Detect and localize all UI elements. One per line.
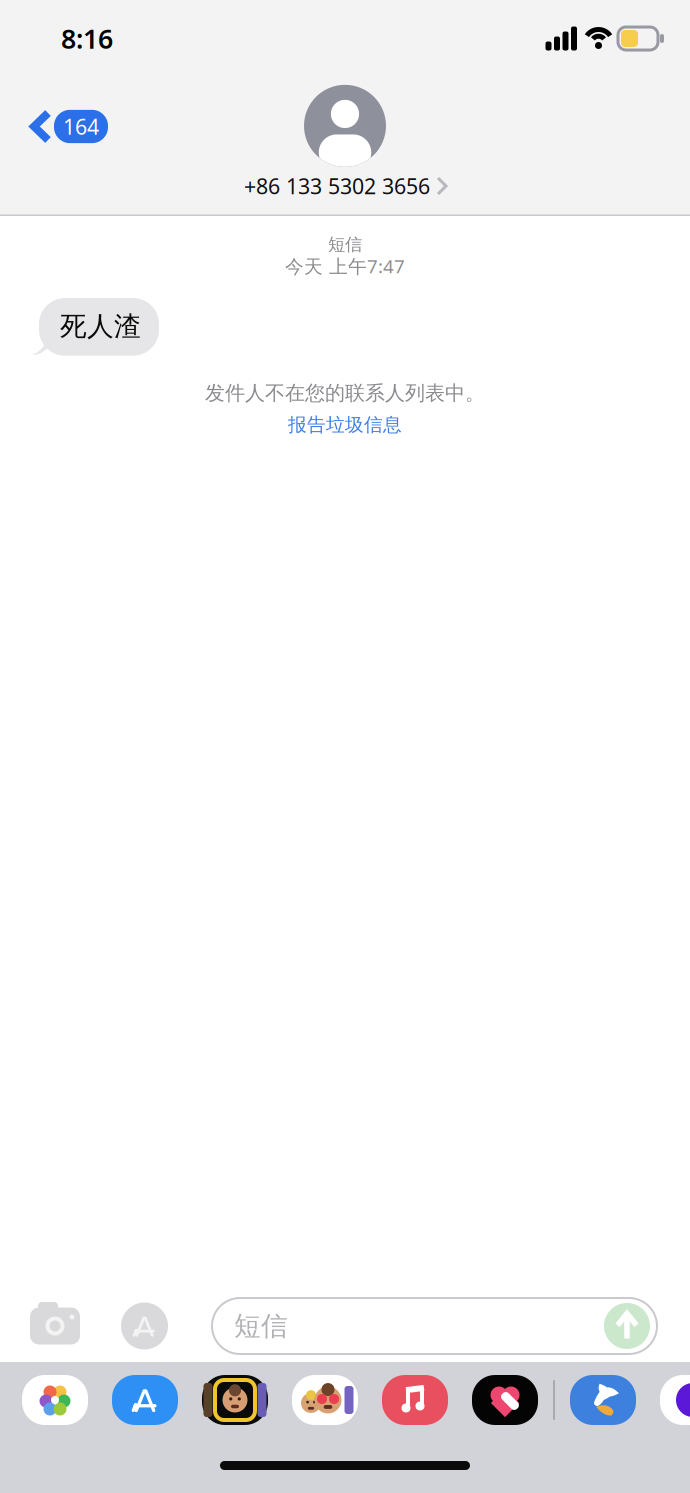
button[interactable]: Music <box>381 1374 449 1426</box>
button[interactable]: Memoji <box>201 1374 269 1426</box>
button[interactable]: 报告垃圾信息 <box>280 409 410 440</box>
button[interactable]: Alipay <box>569 1374 637 1426</box>
staticText: 今天 上午7:47 <box>285 254 405 278</box>
button[interactable]: Take photo <box>28 1304 82 1348</box>
button[interactable]: Send <box>602 1301 652 1351</box>
button[interactable]: iMessage apps <box>119 1300 170 1351</box>
staticText: 短信 <box>234 1310 288 1342</box>
button[interactable]: Photos <box>21 1374 89 1426</box>
staticText: 164 <box>63 112 99 141</box>
staticText: 死人渣 <box>60 310 141 343</box>
button[interactable]: Memoji stickers <box>291 1374 359 1426</box>
staticText: 报告垃圾信息 <box>288 413 402 436</box>
staticText: 短信 <box>328 234 362 255</box>
staticText: 8:16 <box>61 21 113 56</box>
staticText: 发件人不在您的联系人列表中。 <box>205 381 485 405</box>
staticText: +86 133 5302 3656 <box>244 172 430 200</box>
button[interactable]: App Store <box>111 1374 179 1426</box>
button[interactable]: Back to conversations, 164 unread <box>0 89 124 159</box>
button[interactable]: Fitness <box>471 1374 539 1426</box>
button[interactable]: More apps <box>659 1374 690 1426</box>
